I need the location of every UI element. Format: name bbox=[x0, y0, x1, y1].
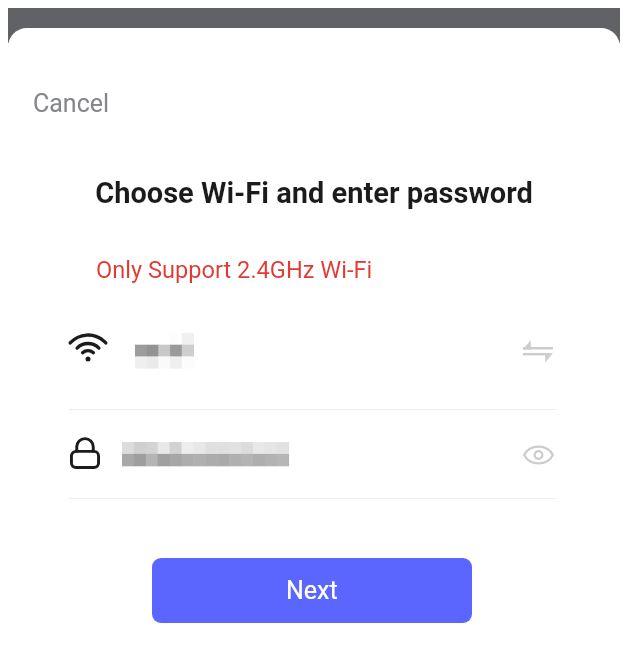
staticText: Cancel bbox=[33, 89, 110, 118]
button[interactable]: Switch network bbox=[0, 316, 628, 376]
button[interactable]: Show password bbox=[515, 438, 562, 472]
button[interactable]: Show password bbox=[0, 425, 628, 485]
button[interactable]: Cancel bbox=[20, 84, 123, 123]
staticText: Choose Wi-Fi and enter password bbox=[0, 176, 628, 210]
staticText: Only Support 2.4GHz Wi-Fi bbox=[96, 256, 373, 284]
staticText: Next bbox=[286, 576, 338, 605]
button[interactable]: Switch network bbox=[515, 327, 561, 366]
button[interactable]: Next bbox=[152, 558, 472, 623]
